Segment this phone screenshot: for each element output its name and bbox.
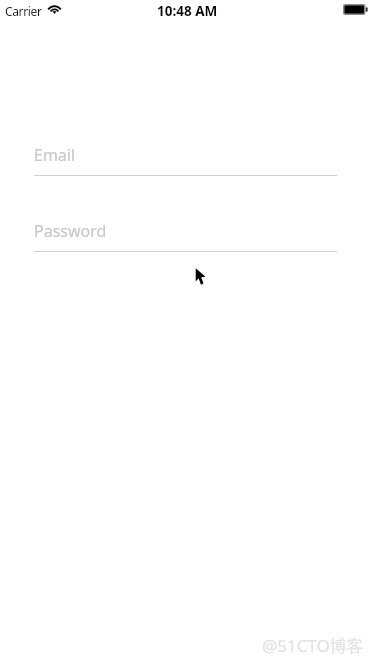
staticText: 10:48 AM xyxy=(157,2,218,20)
staticText: Email xyxy=(34,144,76,166)
staticText: @51CTO博客 xyxy=(262,634,364,657)
staticText: Carrier xyxy=(5,3,42,19)
button[interactable]: Password xyxy=(0,220,371,252)
other: Wi-Fi connected xyxy=(48,4,61,14)
button[interactable]: Email xyxy=(0,144,371,176)
other: Battery full xyxy=(343,4,368,15)
staticText: Password xyxy=(34,220,107,242)
